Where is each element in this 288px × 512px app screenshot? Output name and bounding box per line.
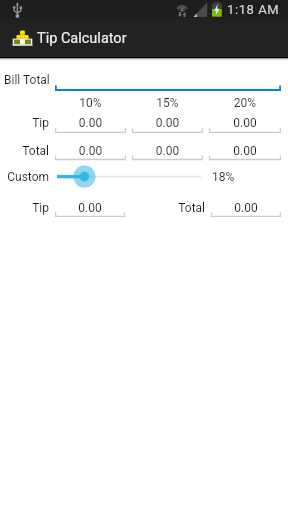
staticText: 1:18 AM [227,2,280,17]
button[interactable]: 0.00 [209,144,281,158]
button[interactable]: 0.00 [55,201,125,215]
button[interactable]: 0.00 [55,116,126,130]
button[interactable]: 0.00 [132,116,203,130]
staticText: 15% [132,96,203,110]
staticText: Tip [0,116,49,130]
staticText: Total [0,201,205,215]
staticText: Bill Total [4,73,50,87]
staticText: 0.00 [55,116,126,130]
button[interactable]: 0.00 [132,144,203,158]
button[interactable]: 20% [209,96,281,110]
staticText: 20% [209,96,281,110]
staticText: 0.00 [55,201,125,215]
button[interactable]: 0.00 [211,201,281,215]
staticText: 0.00 [55,144,126,158]
staticText: 0.00 [209,144,281,158]
staticText: Tip Calculator [37,30,127,47]
button[interactable]: 15% [132,96,203,110]
button[interactable]: 0.00 [55,144,126,158]
staticText: Custom [0,170,49,184]
staticText: 0.00 [132,144,203,158]
staticText: 18% [212,170,235,184]
staticText: 0.00 [132,116,203,130]
button[interactable]: Tip Calculator app icon [0,19,288,57]
staticText: 0.00 [209,116,281,130]
button[interactable]: 0.00 [209,116,281,130]
staticText: 0.00 [211,201,281,215]
other: Tip Calculator app icon [12,30,33,47]
staticText: Total [0,144,49,158]
staticText: 10% [55,96,126,110]
staticText: Tip [0,201,49,215]
button[interactable]: 10% [55,96,126,110]
